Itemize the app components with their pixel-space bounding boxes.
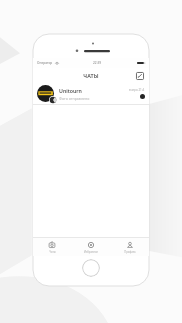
button[interactable]: Unitourn [33, 83, 149, 104]
button[interactable]: Избранное [71, 238, 110, 256]
staticText: 22:39 [93, 61, 102, 65]
button[interactable]: Home [82, 259, 100, 277]
button[interactable]: Чаты [33, 238, 71, 256]
staticText: Оператор [37, 61, 53, 65]
staticText: Unitourn [59, 87, 82, 94]
staticText: вчера 21:4 [129, 88, 145, 92]
button[interactable]: Профиль [110, 238, 149, 256]
staticText: Чаты [49, 250, 56, 254]
staticText: Профиль [124, 250, 136, 254]
button[interactable]: New message [134, 70, 145, 81]
staticText: Фото отправлено [59, 96, 90, 101]
staticText: Избранное [84, 250, 98, 254]
staticText: ЧАТЫ [83, 72, 99, 79]
